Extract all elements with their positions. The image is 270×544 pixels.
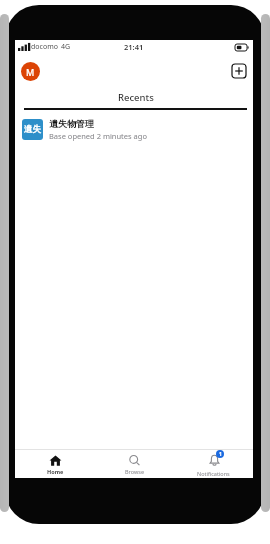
staticText: 21:41 (124, 42, 144, 52)
staticText: docomo (31, 42, 58, 52)
staticText: 1 (219, 451, 222, 458)
button[interactable]: Browse (95, 450, 174, 478)
staticText: Home (47, 468, 64, 475)
button[interactable]: Account (21, 62, 40, 81)
button[interactable]: Home (15, 450, 95, 478)
button[interactable]: 1 (174, 450, 253, 478)
staticText: 4G (61, 42, 71, 52)
staticText: Recents (118, 91, 154, 104)
staticText: M (26, 66, 35, 78)
staticText: Browse (125, 468, 145, 475)
button[interactable]: 遺失 (15, 113, 253, 145)
button[interactable]: Create new (232, 64, 246, 78)
button[interactable]: Recents (18, 88, 253, 110)
staticText: 遺失物管理 (49, 118, 94, 129)
staticText: Notifications (197, 470, 230, 477)
staticText: 遺失 (24, 124, 41, 135)
staticText: Base opened 2 minutes ago (49, 131, 147, 141)
